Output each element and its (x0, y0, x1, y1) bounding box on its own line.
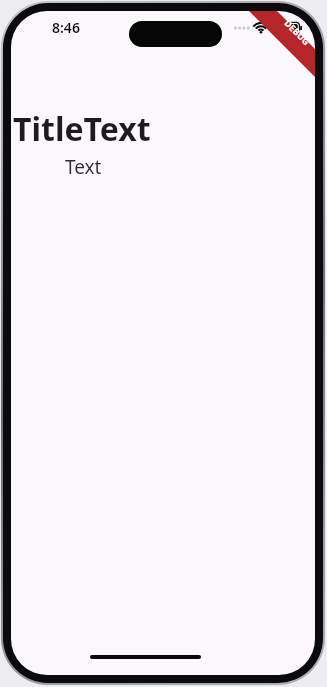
staticText: 8:46 (52, 18, 80, 37)
staticText: Text (65, 154, 315, 180)
staticText: DEBUG (282, 17, 313, 47)
other: Signal, Wi-Fi and battery status (233, 20, 303, 36)
staticText: TitleText (13, 107, 315, 151)
